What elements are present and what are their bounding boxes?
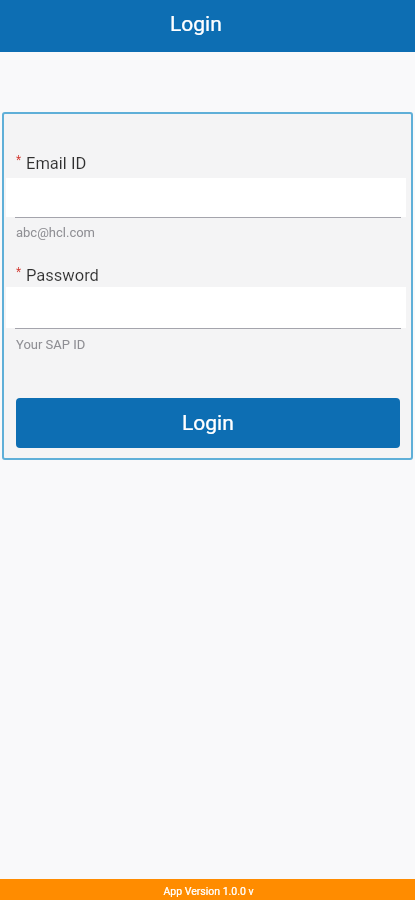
staticText: Login: [182, 411, 234, 436]
staticText: Email ID: [26, 154, 87, 173]
staticText: App Version 1.0.0 v: [163, 885, 254, 897]
button[interactable]: Login: [16, 398, 400, 448]
button[interactable]: *: [6, 255, 406, 355]
staticText: Login: [170, 12, 222, 37]
button[interactable]: App Version 1.0.0 v: [0, 879, 415, 900]
staticText: *: [16, 153, 22, 167]
staticText: *: [16, 265, 22, 279]
staticText: abc@hcl.com: [16, 225, 96, 240]
staticText: Password: [26, 266, 99, 285]
button[interactable]: *: [6, 143, 406, 243]
staticText: Your SAP ID: [16, 337, 86, 352]
